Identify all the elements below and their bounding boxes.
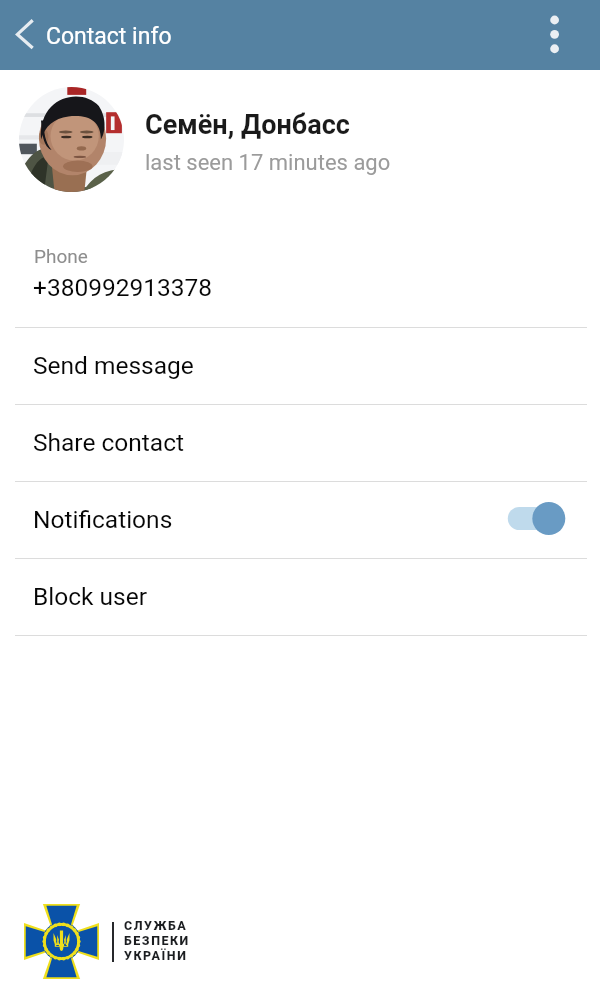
staticText: БЕЗПЕКИ bbox=[124, 933, 190, 948]
staticText: Block user bbox=[33, 582, 147, 611]
button[interactable]: Profile photo bbox=[19, 87, 124, 192]
staticText: Notifications bbox=[33, 505, 173, 534]
staticText: Share contact bbox=[33, 428, 185, 457]
staticText: +380992913378 bbox=[33, 273, 213, 302]
staticText: УКРАЇНИ bbox=[124, 948, 188, 963]
staticText: last seen 17 minutes ago bbox=[145, 150, 391, 176]
button[interactable]: Back bbox=[0, 10, 48, 58]
button[interactable]: Notifications bbox=[0, 482, 600, 558]
button[interactable]: Phone bbox=[0, 234, 600, 327]
button[interactable]: More options bbox=[531, 11, 579, 59]
staticText: Send message bbox=[33, 351, 194, 380]
button[interactable]: Send message bbox=[0, 328, 600, 404]
button[interactable]: Share contact bbox=[0, 405, 600, 481]
staticText: Семён, Донбасс bbox=[145, 109, 350, 141]
staticText: Contact info bbox=[46, 23, 172, 50]
staticText: СЛУЖБА bbox=[124, 918, 188, 933]
button[interactable]: Block user bbox=[0, 559, 600, 635]
staticText: Phone bbox=[34, 245, 88, 267]
